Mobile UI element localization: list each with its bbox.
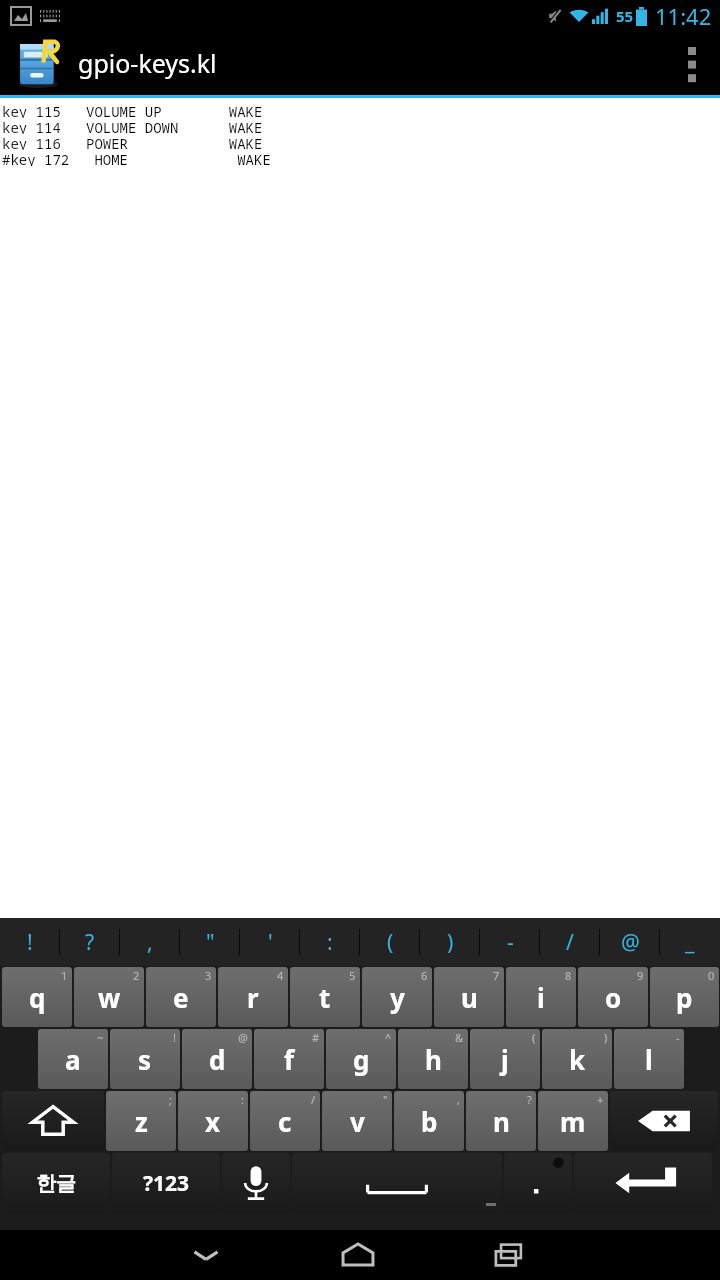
- button[interactable]: g: [326, 1029, 396, 1089]
- button[interactable]: n: [466, 1091, 536, 1151]
- button[interactable]: /: [540, 918, 600, 966]
- button[interactable]: l: [614, 1029, 684, 1089]
- button[interactable]: d: [182, 1029, 252, 1089]
- staticText: ': [268, 928, 273, 957]
- button[interactable]: Shift: [2, 1091, 104, 1151]
- staticText: 3: [205, 968, 212, 983]
- button[interactable]: h: [398, 1029, 468, 1089]
- staticText: 0: [708, 968, 715, 983]
- button[interactable]: Recent apps: [454, 1230, 566, 1280]
- button[interactable]: More options: [664, 31, 720, 95]
- button[interactable]: p: [650, 967, 719, 1027]
- button[interactable]: v: [322, 1091, 392, 1151]
- staticText: _: [685, 928, 695, 957]
- button[interactable]: Backspace: [610, 1091, 718, 1151]
- button[interactable]: k: [542, 1029, 612, 1089]
- staticText: p: [676, 980, 693, 1015]
- staticText: (: [387, 928, 394, 957]
- staticText: w: [98, 980, 121, 1015]
- staticText: gpio-keys.kl: [78, 46, 217, 80]
- staticText: ,: [457, 1092, 460, 1107]
- staticText: 1: [61, 968, 68, 983]
- button[interactable]: (: [360, 918, 420, 966]
- staticText: 4: [277, 968, 284, 983]
- staticText: ?123: [143, 1169, 190, 1198]
- button[interactable]: b: [394, 1091, 464, 1151]
- staticText: key 115 VOLUME_UP WAKE: [2, 102, 263, 118]
- button[interactable]: 한글: [2, 1153, 110, 1213]
- staticText: (: [532, 1030, 536, 1045]
- button[interactable]: !: [0, 918, 60, 966]
- staticText: m: [560, 1104, 586, 1139]
- staticText: a: [65, 1042, 81, 1077]
- staticText: /: [311, 1092, 316, 1107]
- button[interactable]: j: [470, 1029, 540, 1089]
- button[interactable]: r: [218, 967, 288, 1027]
- staticText: v: [350, 1104, 365, 1139]
- button[interactable]: -: [480, 918, 540, 966]
- staticText: c: [278, 1104, 292, 1139]
- staticText: t: [319, 980, 331, 1015]
- staticText: y: [390, 980, 405, 1015]
- button[interactable]: @: [600, 918, 660, 966]
- button[interactable]: t: [290, 967, 360, 1027]
- button[interactable]: Period: [504, 1153, 572, 1213]
- button[interactable]: :: [300, 918, 360, 966]
- staticText: #key 172 HOME WAKE: [2, 150, 271, 166]
- button[interactable]: c: [250, 1091, 320, 1151]
- staticText: e: [173, 980, 189, 1015]
- button[interactable]: _: [660, 918, 720, 966]
- button[interactable]: ": [180, 918, 240, 966]
- button[interactable]: ?123: [112, 1153, 220, 1213]
- staticText: j: [501, 1042, 509, 1077]
- button[interactable]: ': [240, 918, 300, 966]
- staticText: 2: [133, 968, 140, 983]
- button[interactable]: x: [178, 1091, 248, 1151]
- staticText: !: [173, 1030, 176, 1045]
- button[interactable]: ,: [120, 918, 180, 966]
- staticText: 7: [493, 968, 500, 983]
- staticText: +: [597, 1092, 604, 1107]
- staticText: z: [135, 1104, 148, 1139]
- staticText: /: [566, 928, 574, 957]
- button[interactable]: ): [420, 918, 480, 966]
- staticText: i: [537, 980, 545, 1015]
- button[interactable]: Space: [292, 1153, 502, 1213]
- staticText: ~: [97, 1030, 104, 1045]
- button[interactable]: Home: [302, 1230, 414, 1280]
- staticText: 55: [616, 6, 634, 26]
- staticText: -: [676, 1030, 680, 1045]
- staticText: ,: [147, 928, 153, 957]
- button[interactable]: ?: [60, 918, 120, 966]
- staticText: g: [353, 1042, 370, 1077]
- staticText: l: [645, 1042, 653, 1077]
- button[interactable]: Enter: [574, 1153, 712, 1213]
- button[interactable]: e: [146, 967, 216, 1027]
- button[interactable]: z: [106, 1091, 176, 1151]
- button[interactable]: a: [38, 1029, 108, 1089]
- staticText: key 114 VOLUME_DOWN WAKE: [2, 118, 263, 134]
- staticText: ): [604, 1030, 608, 1045]
- staticText: f: [284, 1042, 295, 1077]
- staticText: u: [461, 980, 478, 1015]
- staticText: ): [447, 928, 454, 957]
- staticText: ?: [85, 928, 95, 957]
- button[interactable]: s: [110, 1029, 180, 1089]
- button[interactable]: q: [2, 967, 72, 1027]
- button[interactable]: f: [254, 1029, 324, 1089]
- staticText: ^: [385, 1030, 392, 1045]
- staticText: b: [421, 1104, 438, 1139]
- button[interactable]: Hide keyboard: [150, 1230, 262, 1280]
- button[interactable]: o: [578, 967, 648, 1027]
- staticText: -: [507, 928, 514, 957]
- button[interactable]: w: [74, 967, 144, 1027]
- button[interactable]: Voice input: [222, 1153, 290, 1213]
- button[interactable]: u: [434, 967, 504, 1027]
- staticText: 한글: [36, 1171, 76, 1196]
- staticText: !: [27, 928, 33, 957]
- button[interactable]: y: [362, 967, 432, 1027]
- staticText: x: [205, 1104, 221, 1139]
- button[interactable]: m: [538, 1091, 608, 1151]
- button[interactable]: i: [506, 967, 576, 1027]
- staticText: @: [238, 1030, 248, 1045]
